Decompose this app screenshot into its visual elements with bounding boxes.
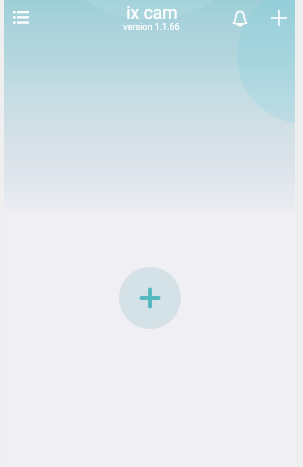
- button[interactable]: Notifications: [226, 4, 254, 32]
- button[interactable]: Menu: [7, 3, 35, 31]
- staticText: ix cam: [126, 3, 178, 24]
- button[interactable]: Add camera: [119, 267, 181, 329]
- button[interactable]: Add: [265, 4, 293, 32]
- staticText: version 1.1.66: [123, 22, 180, 33]
